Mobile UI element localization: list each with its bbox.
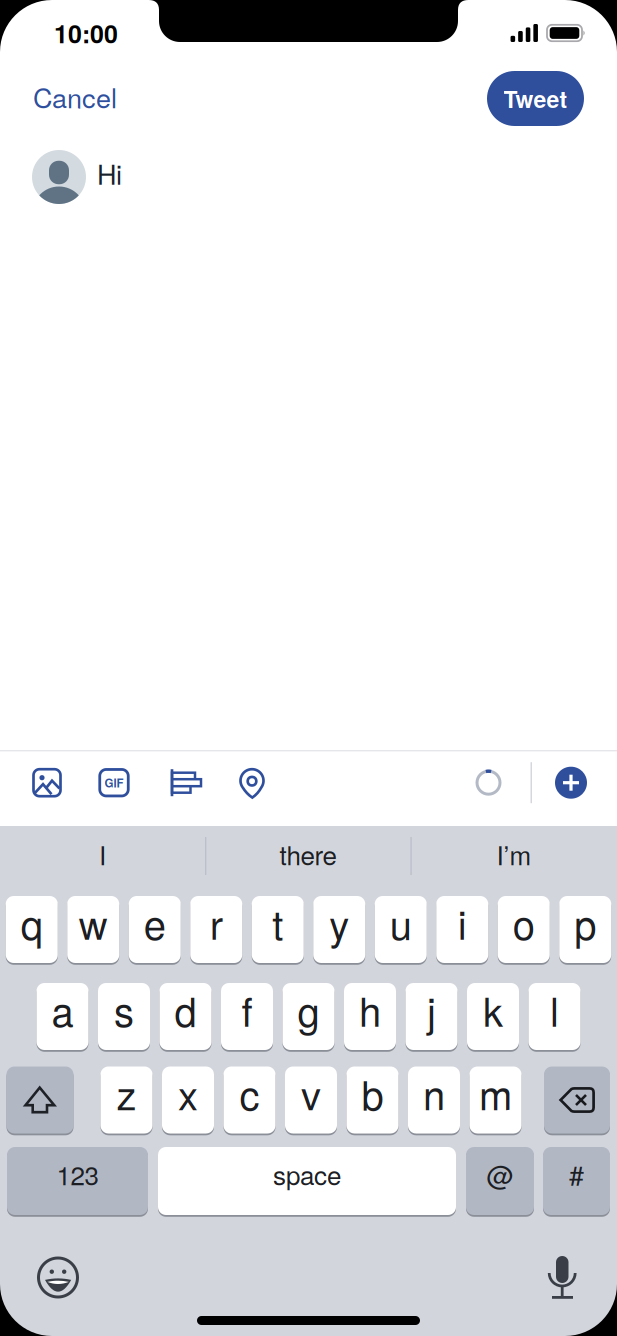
staticText: m — [479, 1064, 512, 1122]
staticText: y — [329, 894, 349, 951]
staticText: I — [99, 835, 106, 873]
staticText: Cancel — [33, 77, 117, 116]
button[interactable]: o — [498, 896, 550, 963]
button[interactable]: s — [98, 983, 150, 1050]
staticText: 123 — [56, 1155, 98, 1193]
button[interactable]: @ — [466, 1147, 534, 1215]
button[interactable]: c — [223, 1066, 275, 1133]
staticText: q — [21, 894, 43, 951]
staticText: 10:00 — [54, 15, 118, 51]
staticText: I’m — [496, 835, 531, 873]
staticText: u — [390, 894, 412, 951]
button[interactable]: Add poll — [164, 764, 206, 802]
button[interactable]: y — [313, 896, 365, 963]
staticText: n — [423, 1064, 445, 1122]
button[interactable]: I’m — [411, 826, 617, 896]
button[interactable]: n — [408, 1066, 460, 1133]
button[interactable]: p — [559, 896, 611, 963]
staticText: z — [116, 1064, 136, 1122]
button[interactable]: h — [344, 983, 396, 1050]
button[interactable]: r — [190, 896, 242, 963]
staticText: j — [427, 981, 436, 1038]
button[interactable]: Shift — [6, 1066, 73, 1133]
button[interactable]: I — [0, 826, 205, 896]
button[interactable]: i — [436, 896, 488, 963]
staticText: g — [297, 981, 319, 1038]
button[interactable]: Tag location — [235, 766, 269, 800]
staticText: e — [144, 894, 166, 951]
button[interactable]: m — [469, 1066, 521, 1133]
staticText: space — [273, 1155, 341, 1193]
button[interactable]: Dictate — [549, 1256, 576, 1299]
staticText: w — [79, 894, 108, 951]
button[interactable]: Cancel — [33, 79, 117, 118]
button[interactable]: b — [346, 1066, 398, 1133]
button[interactable]: Add GIF — [97, 766, 131, 800]
button[interactable]: z — [100, 1066, 152, 1133]
staticText: x — [178, 1064, 198, 1122]
staticText: Tweet — [503, 82, 567, 115]
staticText: c — [239, 1064, 259, 1122]
staticText: GIF — [104, 774, 123, 791]
staticText: s — [114, 981, 134, 1038]
button[interactable]: k — [467, 983, 519, 1050]
button[interactable]: j — [405, 983, 457, 1050]
staticText: t — [272, 894, 283, 951]
button[interactable]: a — [36, 983, 88, 1050]
staticText: d — [174, 981, 196, 1038]
button[interactable]: w — [67, 896, 119, 963]
button[interactable]: Emoji — [38, 1257, 78, 1297]
staticText: h — [359, 981, 381, 1038]
button[interactable]: t — [252, 896, 304, 963]
button[interactable]: space — [158, 1147, 456, 1215]
button[interactable]: 123 — [7, 1147, 148, 1215]
button[interactable]: Tweet — [487, 71, 584, 126]
staticText: # — [569, 1155, 584, 1193]
staticText: o — [513, 894, 535, 951]
button[interactable]: Add tweet — [555, 767, 587, 799]
button[interactable]: g — [282, 983, 334, 1050]
staticText: i — [458, 894, 467, 951]
button[interactable]: there — [205, 826, 411, 896]
staticText: a — [51, 981, 73, 1038]
staticText: r — [210, 894, 223, 951]
button[interactable]: x — [162, 1066, 214, 1133]
staticText: v — [301, 1064, 321, 1122]
button[interactable]: q — [6, 896, 58, 963]
button[interactable]: # — [543, 1147, 610, 1215]
button[interactable]: d — [159, 983, 211, 1050]
staticText: l — [550, 981, 559, 1038]
button[interactable]: v — [285, 1066, 337, 1133]
staticText: @ — [486, 1155, 513, 1193]
staticText: there — [279, 835, 336, 873]
button[interactable]: f — [221, 983, 273, 1050]
button[interactable]: e — [129, 896, 181, 963]
button[interactable]: Add photo — [30, 766, 64, 800]
staticText: k — [483, 981, 503, 1038]
button[interactable]: u — [375, 896, 427, 963]
staticText: f — [241, 981, 252, 1038]
staticText: Hi — [97, 154, 122, 192]
staticText: b — [361, 1064, 383, 1122]
staticText: p — [574, 894, 596, 951]
button[interactable]: l — [528, 983, 580, 1050]
button[interactable]: Delete — [544, 1066, 610, 1133]
